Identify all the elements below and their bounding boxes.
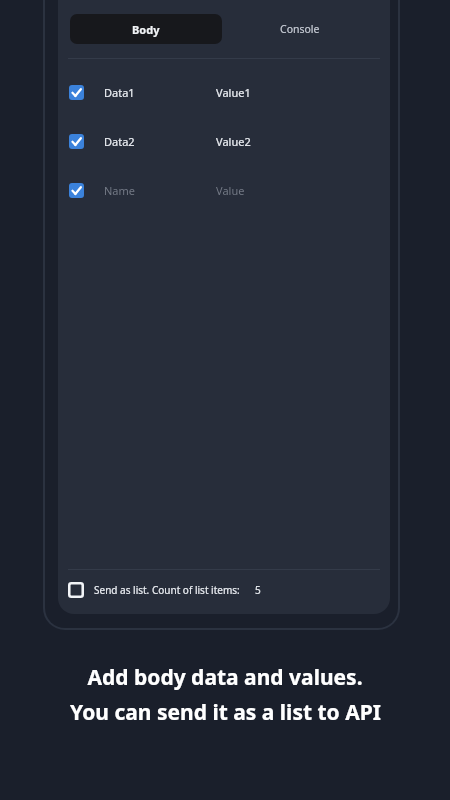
staticText: Value2 — [216, 134, 251, 149]
staticText: Value — [216, 183, 245, 198]
button[interactable]: Console — [222, 14, 378, 44]
button[interactable]: Enabled, checked — [69, 134, 84, 149]
staticText: Body — [132, 22, 160, 37]
button[interactable]: Enabled, checked — [58, 68, 390, 117]
button[interactable]: Enabled, checked — [69, 183, 84, 198]
staticText: Value1 — [216, 85, 251, 100]
button[interactable]: Enabled, checked — [69, 85, 84, 100]
staticText: Data2 — [104, 134, 216, 149]
staticText: Add body data and values. — [87, 663, 363, 692]
staticText: Console — [280, 22, 320, 36]
staticText: You can send it as a list to API — [70, 698, 381, 727]
button[interactable]: Send as list, unchecked — [68, 582, 84, 598]
button[interactable]: Send as list, unchecked — [58, 570, 390, 610]
button[interactable]: Enabled, checked — [58, 166, 390, 215]
button[interactable]: Body — [70, 14, 222, 44]
staticText: Name — [104, 183, 216, 198]
staticText: 5 — [255, 583, 261, 597]
staticText: Data1 — [104, 85, 216, 100]
button[interactable]: Enabled, checked — [58, 117, 390, 166]
staticText: Send as list. Count of list items: — [94, 583, 240, 597]
